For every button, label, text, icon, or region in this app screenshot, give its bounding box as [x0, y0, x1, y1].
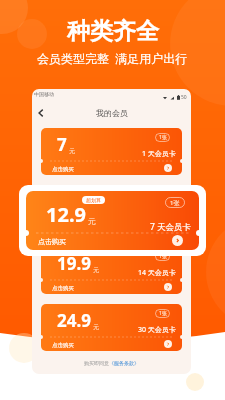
staticText: 1张	[159, 310, 167, 317]
staticText: 中国移动	[34, 91, 54, 97]
button[interactable]: 12.9	[26, 191, 199, 250]
staticText: 元	[93, 266, 99, 274]
staticText: 《服务条款》	[109, 360, 139, 366]
staticText: 元	[69, 147, 75, 155]
staticText: 1张	[159, 134, 167, 141]
staticText: 点击购买	[52, 285, 74, 292]
button[interactable]: 7	[41, 128, 182, 175]
staticText: 元	[88, 216, 96, 226]
staticText: 30 天会员卡	[138, 325, 176, 335]
staticText: 7	[57, 133, 67, 156]
button[interactable]: Buy 24.9 yuan 30 天会员卡	[164, 340, 172, 348]
button[interactable]: Back	[34, 106, 48, 120]
staticText: 12.9	[46, 201, 86, 228]
button[interactable]: Buy 7 yuan 1 天会员卡	[164, 164, 172, 172]
staticText: 我的会员	[96, 108, 128, 118]
staticText: 超划算	[86, 197, 101, 203]
staticText: 点击购买	[52, 342, 74, 349]
staticText: 24.9	[57, 309, 91, 332]
staticText: 50	[181, 94, 187, 101]
button[interactable]: 19.9	[41, 247, 182, 294]
button[interactable]: Buy 19.9 yuan 14 天会员卡	[164, 283, 172, 291]
staticText: 点击购买	[38, 237, 66, 246]
staticText: 1张	[159, 253, 167, 260]
staticText: 购买即同意	[84, 360, 109, 366]
staticText: 7 天会员卡	[150, 221, 192, 233]
button[interactable]: Buy 7 day card	[172, 235, 183, 246]
staticText: 会员类型完整 满足用户出行	[37, 50, 188, 66]
staticText: 1 天会员卡	[142, 149, 176, 159]
staticText: 14 天会员卡	[138, 268, 176, 278]
staticText: 点击购买	[52, 166, 74, 173]
staticText: 1张	[170, 199, 180, 207]
staticText: 种类齐全	[67, 17, 159, 46]
staticText: 元	[93, 323, 99, 331]
button[interactable]: 24.9	[41, 304, 182, 351]
staticText: 19.9	[57, 252, 91, 275]
